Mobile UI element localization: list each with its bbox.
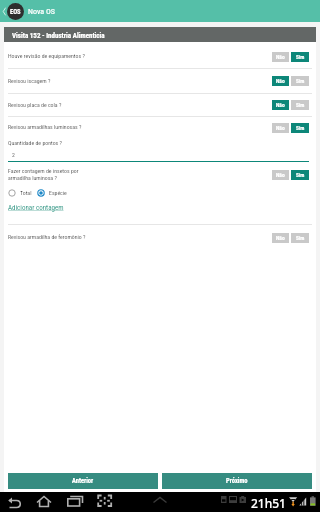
- button[interactable]: Adicionar contagem: [8, 204, 64, 212]
- staticText: Anterior: [72, 477, 94, 485]
- button[interactable]: Show navigation bar: [152, 496, 168, 504]
- button[interactable]: Sim: [291, 123, 309, 133]
- button[interactable]: Back: [7, 495, 23, 509]
- staticText: Sim: [296, 125, 305, 131]
- button[interactable]: Anterior: [8, 473, 158, 489]
- button[interactable]: Sim: [291, 52, 309, 62]
- button[interactable]: Próximo: [162, 473, 312, 489]
- staticText: 21h51: [251, 495, 286, 511]
- staticText: Sim: [296, 235, 305, 241]
- staticText: Não: [276, 54, 285, 60]
- button[interactable]: Back: [0, 0, 7, 22]
- staticText: Sim: [296, 78, 305, 84]
- staticText: Sim: [296, 172, 305, 178]
- staticText: EOS: [10, 8, 21, 16]
- staticText: Não: [276, 125, 285, 131]
- staticText: Não: [276, 235, 285, 241]
- staticText: Houve revisão de equipamentos ?: [8, 53, 272, 60]
- button[interactable]: Revisou armadilha de feromônio ?: [4, 225, 316, 249]
- staticText: Quantidade de pontos ?: [8, 140, 62, 147]
- button[interactable]: Sim: [291, 233, 309, 243]
- button[interactable]: Home: [36, 495, 53, 509]
- staticText: Revisou armadilhas luminosas ?: [8, 124, 272, 131]
- button[interactable]: Não: [272, 170, 289, 180]
- button[interactable]: Não: [272, 52, 289, 62]
- staticText: Revisou placa de cola ?: [8, 102, 272, 109]
- staticText: 2: [12, 152, 15, 159]
- staticText: Sim: [296, 54, 305, 60]
- staticText: Não: [276, 172, 285, 178]
- button[interactable]: Total: [8, 189, 32, 197]
- button[interactable]: Sim: [291, 170, 309, 180]
- staticText: Nova OS: [28, 7, 55, 16]
- staticText: Visita 152 - Industria Alimenticia: [12, 32, 105, 40]
- button[interactable]: Revisou placa de cola ?: [4, 94, 316, 116]
- button[interactable]: Sim: [291, 76, 309, 86]
- staticText: Espécie: [49, 190, 67, 197]
- button[interactable]: Sim: [291, 100, 309, 110]
- button[interactable]: Espécie: [37, 189, 67, 197]
- button[interactable]: Revisou iscagem ?: [4, 69, 316, 93]
- button[interactable]: Não: [272, 123, 289, 133]
- button[interactable]: Screenshot: [96, 494, 113, 510]
- button[interactable]: Houve revisão de equipamentos ?: [4, 42, 316, 68]
- staticText: Não: [276, 102, 285, 108]
- staticText: Não: [276, 78, 285, 84]
- button[interactable]: Não: [272, 76, 289, 86]
- staticText: Próximo: [226, 477, 248, 485]
- button[interactable]: Revisou armadilhas luminosas ?: [4, 117, 316, 138]
- staticText: Total: [20, 190, 32, 197]
- staticText: Revisou iscagem ?: [8, 78, 272, 85]
- staticText: Sim: [296, 102, 305, 108]
- staticText: Fazer contagem de insetos por armadilha …: [8, 168, 272, 182]
- button[interactable]: Não: [272, 233, 289, 243]
- button[interactable]: Recent apps: [66, 495, 84, 509]
- staticText: Revisou armadilha de feromônio ?: [8, 234, 272, 241]
- button[interactable]: Não: [272, 100, 289, 110]
